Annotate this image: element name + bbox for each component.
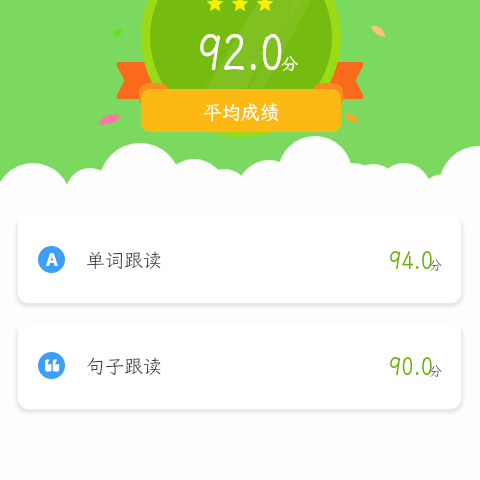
staticText: 单词跟读 (86, 247, 163, 272)
staticText: 句子跟读 (86, 353, 163, 378)
staticText: 分 (281, 52, 298, 74)
button[interactable]: A (18, 216, 461, 303)
staticText: A (46, 248, 58, 271)
staticText: 94.0 (389, 244, 433, 275)
staticText: 分 (429, 363, 443, 380)
staticText: 平均成绩 (203, 99, 280, 124)
staticText: 分 (429, 257, 443, 274)
button[interactable]: 句子跟读 (18, 322, 461, 409)
staticText: 92.0 (198, 18, 284, 83)
staticText: 90.0 (389, 350, 433, 381)
